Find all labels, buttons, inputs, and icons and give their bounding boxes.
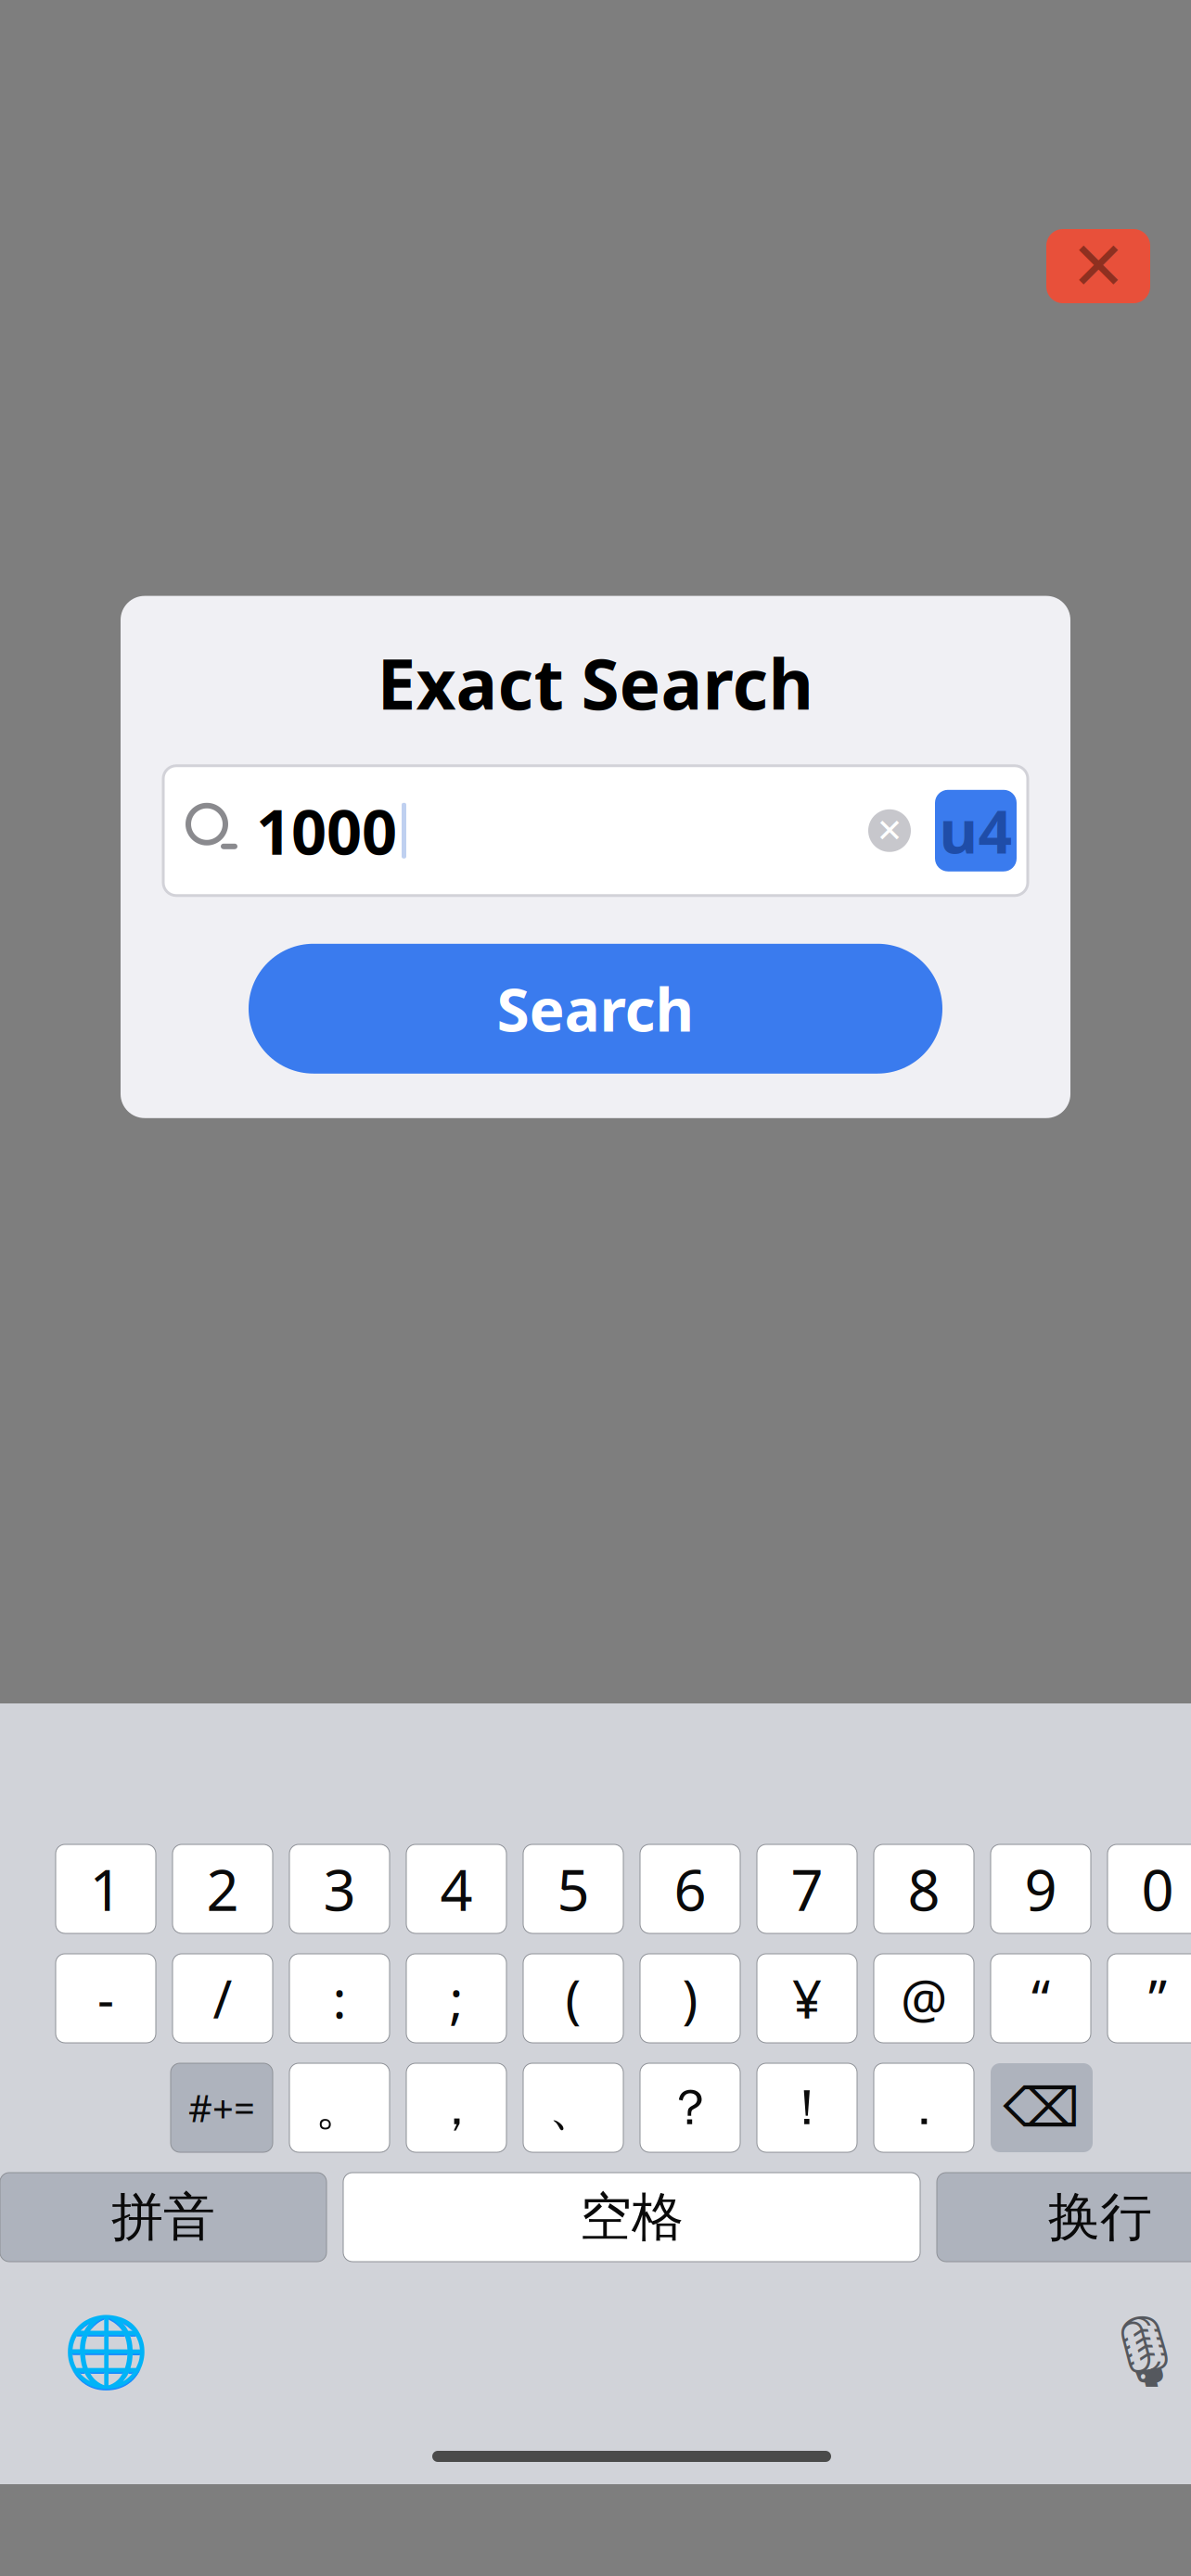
staticText: : — [333, 1964, 346, 2033]
button[interactable]: ？ — [640, 2063, 740, 2152]
staticText: ¥ — [792, 1964, 822, 2033]
button[interactable]: ¥ — [757, 1954, 857, 2043]
staticText: Search — [497, 969, 694, 1048]
button[interactable]: u4 — [935, 790, 1017, 871]
staticText: 0 — [1141, 1851, 1174, 1927]
staticText: ⌫ — [1003, 2077, 1080, 2139]
button[interactable]: 2 — [173, 1844, 273, 1933]
staticText: 换行 — [1048, 2185, 1152, 2249]
button[interactable]: #+= — [171, 2063, 273, 2152]
button[interactable]: 3 — [289, 1844, 390, 1933]
staticText: 、 — [549, 2077, 598, 2138]
staticText: 1000 — [256, 790, 397, 872]
button[interactable]: 、 — [523, 2063, 623, 2152]
staticText: 🌐 — [63, 2312, 149, 2391]
staticText: ( — [565, 1964, 581, 2033]
button[interactable]: ． — [874, 2063, 974, 2152]
button[interactable]: ) — [640, 1954, 740, 2043]
button[interactable]: 8 — [874, 1844, 974, 1933]
button[interactable]: 0 — [1108, 1844, 1191, 1933]
staticText: - — [97, 1964, 114, 2033]
button[interactable]: ， — [406, 2063, 506, 2152]
staticText: 5 — [557, 1851, 589, 1927]
staticText: #+= — [188, 2083, 255, 2132]
staticText: 🎙 — [1101, 2312, 1189, 2391]
button[interactable]: Close — [1046, 229, 1150, 303]
staticText: ) — [682, 1964, 698, 2033]
button[interactable]: ; — [406, 1954, 506, 2043]
staticText: 8 — [908, 1851, 940, 1927]
button[interactable]: Delete — [991, 2063, 1093, 2152]
staticText: ✕ — [876, 812, 903, 849]
staticText: ． — [899, 2077, 948, 2138]
staticText: 3 — [323, 1851, 356, 1927]
button[interactable]: / — [173, 1954, 273, 2043]
button[interactable]: 6 — [640, 1844, 740, 1933]
button[interactable]: 7 — [757, 1844, 857, 1933]
button[interactable]: Dictate — [1094, 2301, 1191, 2403]
staticText: ？ — [666, 2077, 715, 2138]
button[interactable]: Clear text — [868, 809, 911, 852]
button[interactable]: 1 — [56, 1844, 156, 1933]
staticText: 拼音 — [111, 2185, 215, 2249]
button[interactable]: 。 — [289, 2063, 390, 2152]
staticText: ！ — [782, 2077, 832, 2138]
button[interactable]: Switch keyboard — [55, 2301, 157, 2403]
button[interactable]: - — [56, 1954, 156, 2043]
button[interactable]: 拼音 — [0, 2173, 327, 2262]
button[interactable]: @ — [874, 1954, 974, 2043]
button[interactable]: 9 — [991, 1844, 1091, 1933]
button[interactable]: Search — [249, 944, 942, 1074]
staticText: ; — [449, 1964, 463, 2033]
staticText: 9 — [1025, 1851, 1057, 1927]
button[interactable]: “ — [991, 1954, 1091, 2043]
button[interactable]: 换行 — [937, 2173, 1191, 2262]
staticText: 7 — [791, 1851, 823, 1927]
button[interactable]: 4 — [406, 1844, 506, 1933]
button[interactable]: 空格 — [343, 2173, 920, 2262]
staticText: 。 — [315, 2077, 364, 2138]
staticText: ， — [432, 2077, 481, 2138]
button[interactable]: : — [289, 1954, 390, 2043]
button[interactable]: 5 — [523, 1844, 623, 1933]
staticText: ” — [1148, 1964, 1167, 2033]
staticText: 1 — [90, 1851, 122, 1927]
button[interactable]: ( — [523, 1954, 623, 2043]
staticText: ✕ — [1070, 228, 1126, 304]
staticText: Exact Search — [377, 637, 814, 729]
button[interactable]: ！ — [757, 2063, 857, 2152]
staticText: 4 — [440, 1851, 473, 1927]
staticText: u4 — [939, 791, 1012, 870]
staticText: “ — [1031, 1964, 1050, 2033]
staticText: 6 — [674, 1851, 706, 1927]
button[interactable]: ” — [1108, 1954, 1191, 2043]
staticText: @ — [901, 1964, 947, 2033]
staticText: 空格 — [580, 2185, 684, 2249]
staticText: 2 — [206, 1851, 239, 1927]
staticText: / — [213, 1964, 232, 2033]
